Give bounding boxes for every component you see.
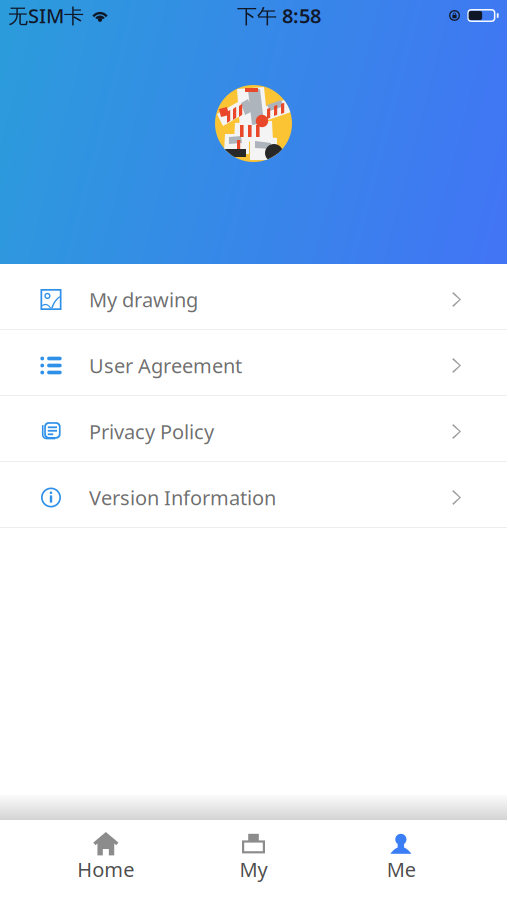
button[interactable]: Me bbox=[327, 820, 475, 880]
staticText: My drawing bbox=[89, 286, 198, 313]
button[interactable]: My drawing bbox=[0, 264, 507, 329]
staticText: 下午 8:58 bbox=[237, 2, 321, 29]
staticText: Home bbox=[77, 856, 134, 883]
staticText: Privacy Policy bbox=[89, 418, 214, 445]
button[interactable]: Home bbox=[32, 820, 180, 880]
button[interactable]: Version Information bbox=[0, 462, 507, 527]
staticText: My bbox=[239, 856, 267, 883]
button[interactable]: Privacy Policy bbox=[0, 396, 507, 461]
staticText: 无SIM卡 bbox=[8, 2, 84, 29]
staticText: User Agreement bbox=[89, 352, 242, 379]
staticText: Me bbox=[387, 856, 416, 883]
button[interactable]: My bbox=[180, 820, 327, 880]
staticText: Version Information bbox=[89, 484, 276, 511]
button[interactable]: User Agreement bbox=[0, 330, 507, 395]
